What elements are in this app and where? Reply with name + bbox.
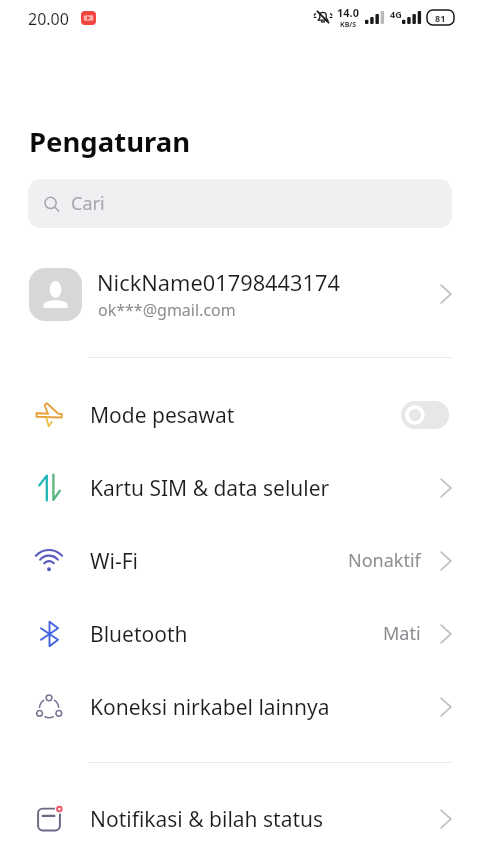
button[interactable]: Kartu SIM & data seluler <box>0 451 480 524</box>
button[interactable]: Notifikasi & bilah status <box>0 782 480 854</box>
button[interactable]: Mode pesawat <box>0 378 480 451</box>
staticText: 4G <box>390 8 402 20</box>
staticText: Bluetooth <box>90 620 188 649</box>
staticText: KB/S <box>340 20 357 30</box>
staticText: Pengaturan <box>29 123 191 160</box>
staticText: Mode pesawat <box>90 401 235 430</box>
staticText: Kartu SIM & data seluler <box>90 474 330 503</box>
staticText: Mati <box>383 621 421 646</box>
other: Airplane mode toggle <box>401 401 449 429</box>
other: YouTube notification <box>81 11 96 25</box>
button[interactable]: NickName01798443174 <box>0 258 480 332</box>
staticText: Nonaktif <box>348 548 421 573</box>
button[interactable]: Cari <box>28 179 452 228</box>
staticText: 14.0 <box>337 5 359 20</box>
staticText: 81 <box>435 12 446 24</box>
staticText: 20.00 <box>28 8 69 30</box>
staticText: Koneksi nirkabel lainnya <box>90 693 330 722</box>
staticText: Wi-Fi <box>90 547 139 576</box>
staticText: Cari <box>71 191 105 216</box>
staticText: Notifikasi & bilah status <box>90 805 324 834</box>
staticText: NickName01798443174 <box>97 268 340 298</box>
button[interactable]: Koneksi nirkabel lainnya <box>0 670 480 743</box>
button[interactable]: Bluetooth <box>0 597 480 670</box>
staticText: ok***@gmail.com <box>98 299 236 321</box>
button[interactable]: Wi-Fi <box>0 524 480 597</box>
